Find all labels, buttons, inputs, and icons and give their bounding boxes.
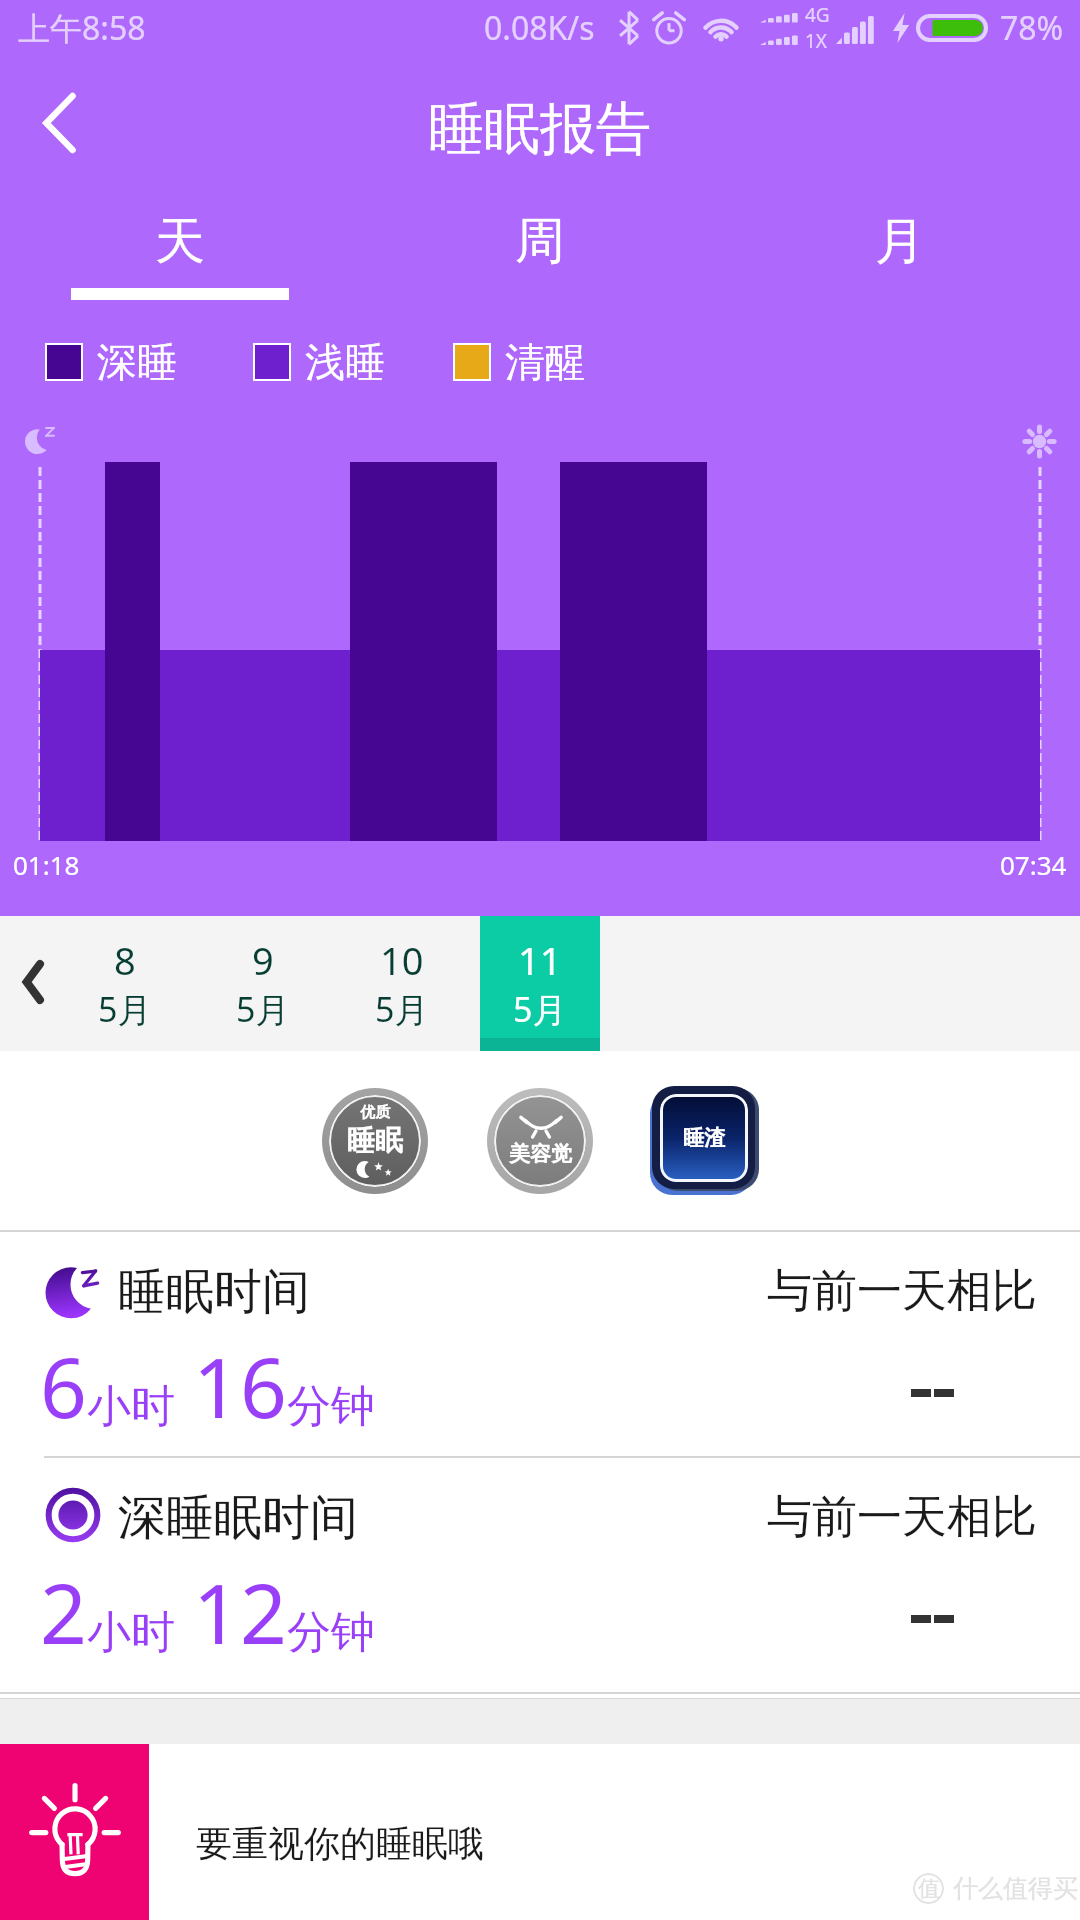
staticText: 2	[40, 1556, 87, 1668]
button[interactable]: Previous week	[0, 916, 72, 1051]
staticText: 5月	[513, 986, 567, 1032]
staticText: 分钟	[287, 1605, 375, 1660]
staticText: 美容觉	[509, 1141, 572, 1167]
staticText: 8	[114, 934, 136, 986]
staticText: 5月	[236, 986, 290, 1032]
button[interactable]: 8	[65, 916, 185, 1051]
staticText: 0.08K/s	[484, 6, 595, 50]
staticText: 要重视你的睡眠哦	[196, 1821, 484, 1866]
button[interactable]: 深睡眠时间	[0, 1456, 1080, 1682]
staticText: 深睡	[97, 337, 177, 387]
staticText: 与前一天相比	[767, 1263, 1037, 1320]
staticText: 12	[193, 1556, 287, 1668]
staticText: 睡渣	[683, 1125, 725, 1151]
staticText: 小时	[87, 1605, 175, 1660]
staticText: 月	[875, 210, 925, 273]
button[interactable]: 睡眠时间	[0, 1230, 1080, 1456]
button[interactable]: 美容觉	[487, 1088, 593, 1194]
staticText: 4G	[805, 2, 830, 28]
staticText: 16	[193, 1330, 287, 1442]
staticText: 1X	[805, 28, 828, 54]
button[interactable]: 周	[360, 190, 720, 310]
staticText: 分钟	[287, 1379, 375, 1434]
button[interactable]: 天	[0, 190, 360, 310]
button[interactable]: 要重视你的睡眠哦	[0, 1744, 1080, 1920]
staticText: 天	[155, 210, 205, 273]
staticText: 深睡眠时间	[118, 1488, 358, 1548]
staticText: 9	[252, 934, 274, 986]
staticText: 5月	[375, 986, 429, 1032]
staticText: 小时	[87, 1379, 175, 1434]
button[interactable]: 优质	[322, 1088, 428, 1194]
button[interactable]: 9	[203, 916, 323, 1051]
staticText: 优质	[360, 1103, 390, 1122]
staticText: 5月	[98, 986, 152, 1032]
button[interactable]: 睡渣	[652, 1086, 755, 1189]
button[interactable]: Back	[0, 56, 120, 190]
staticText: 睡眠报告	[428, 94, 652, 165]
staticText: 值	[918, 1875, 940, 1903]
staticText: 睡眠	[347, 1123, 403, 1158]
staticText: 01:18	[13, 847, 80, 882]
staticText: 睡眠时间	[118, 1262, 310, 1322]
staticText: 浅睡	[305, 337, 385, 387]
staticText: 与前一天相比	[767, 1489, 1037, 1546]
staticText: 10	[380, 934, 424, 986]
staticText: 11	[518, 934, 562, 986]
staticText: 07:34	[1000, 847, 1067, 882]
staticText: 清醒	[505, 337, 585, 387]
button[interactable]: 月	[720, 190, 1080, 310]
staticText: 周	[515, 210, 565, 273]
button[interactable]: 11	[480, 916, 600, 1051]
staticText: 78%	[1000, 6, 1064, 50]
staticText: 什么值得买	[953, 1873, 1078, 1904]
staticText: 6	[40, 1330, 87, 1442]
button[interactable]: 10	[342, 916, 462, 1051]
staticText: 上午8:58	[18, 6, 146, 50]
